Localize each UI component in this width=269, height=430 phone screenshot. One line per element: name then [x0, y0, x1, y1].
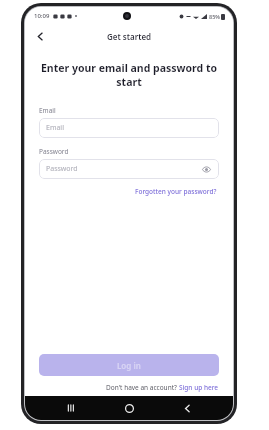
button[interactable]: Forgotten your password?	[133, 186, 219, 197]
staticText: Log in	[117, 360, 141, 371]
staticText: Sign up here	[179, 383, 219, 392]
staticText: 10:09	[34, 12, 50, 20]
button[interactable]: Show password	[200, 163, 212, 175]
staticText: Email	[46, 123, 64, 133]
staticText: Forgotten your password?	[135, 187, 217, 196]
button[interactable]: Sign up here	[179, 383, 219, 392]
staticText: 85%	[209, 13, 220, 20]
staticText: Don't have an account?	[106, 383, 179, 392]
button[interactable]: Email	[39, 118, 219, 138]
staticText: Password	[46, 164, 78, 174]
staticText: Enter your email and password to start	[39, 61, 219, 89]
button[interactable]: Log in	[39, 354, 219, 376]
button[interactable]: Password	[39, 159, 219, 179]
button[interactable]: Back	[175, 396, 199, 420]
button[interactable]: Recents	[59, 396, 83, 420]
staticText: Email	[39, 106, 56, 115]
staticText: Password	[39, 147, 69, 156]
staticText: Get started	[107, 31, 152, 42]
button[interactable]: Back	[29, 25, 51, 47]
button[interactable]: Home	[117, 396, 141, 420]
